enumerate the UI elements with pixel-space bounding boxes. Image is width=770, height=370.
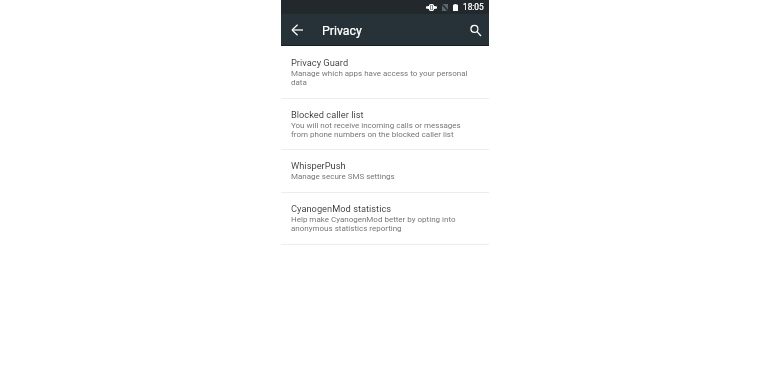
staticText: Manage secure SMS settings <box>291 172 395 181</box>
staticText: Blocked caller list <box>291 109 364 120</box>
staticText: Privacy Guard <box>291 57 349 68</box>
button[interactable]: CyanogenMod statistics <box>281 193 489 245</box>
staticText: You will not receive incoming calls or m… <box>291 121 472 139</box>
staticText: 18:05 <box>463 2 484 12</box>
button[interactable]: WhisperPush <box>281 150 489 193</box>
button[interactable]: Privacy Guard <box>281 46 489 99</box>
staticText: Privacy <box>322 24 362 38</box>
staticText: CyanogenMod statistics <box>291 203 392 214</box>
staticText: Help make CyanogenMod better by opting i… <box>291 215 472 233</box>
button[interactable]: Back <box>290 23 304 37</box>
button[interactable]: Search <box>468 23 482 37</box>
staticText: Manage which apps have access to your pe… <box>291 69 472 87</box>
staticText: WhisperPush <box>291 160 346 171</box>
button[interactable]: Blocked caller list <box>281 99 489 150</box>
